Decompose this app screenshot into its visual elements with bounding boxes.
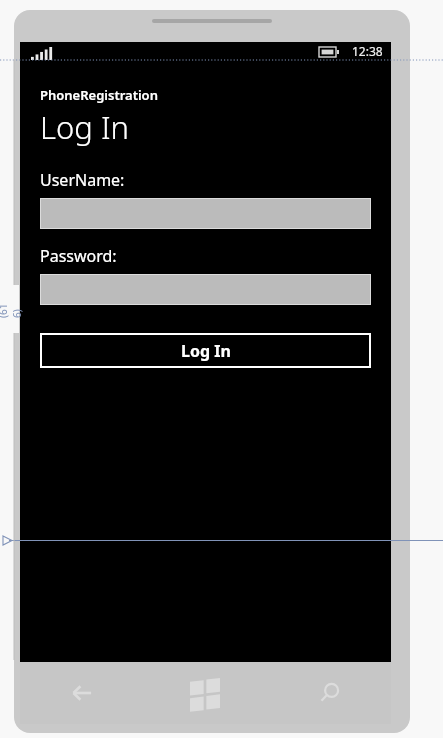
staticText: UserName:	[40, 169, 125, 191]
button[interactable]: Log In	[40, 333, 371, 368]
staticText: Password:	[40, 245, 117, 267]
button[interactable]	[40, 274, 371, 305]
staticText: Log In	[40, 106, 129, 148]
staticText: PhoneRegistration	[40, 86, 158, 104]
button[interactable]: Start	[143, 662, 267, 724]
staticText: 12:38	[352, 43, 383, 59]
staticText: (616)	[0, 300, 24, 318]
button[interactable]	[40, 198, 371, 229]
staticText: Log In	[181, 340, 231, 362]
